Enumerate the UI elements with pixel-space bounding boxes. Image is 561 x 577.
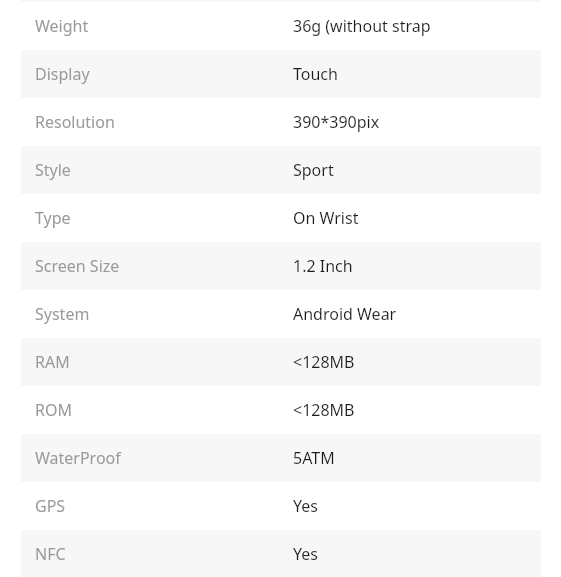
staticText: GPS	[35, 495, 66, 517]
staticText: NFC	[35, 543, 66, 565]
staticText: Yes	[293, 543, 553, 565]
staticText: RAM	[35, 351, 70, 373]
button[interactable]: Screen Size	[0, 242, 561, 290]
button[interactable]: Resolution	[0, 98, 561, 146]
staticText: 5ATM	[293, 447, 553, 469]
staticText: Display	[35, 63, 90, 85]
staticText: On Wrist	[293, 207, 553, 229]
button[interactable]: Style	[0, 146, 561, 194]
staticText: WaterProof	[35, 447, 121, 469]
staticText: 36g (without strap	[293, 15, 553, 37]
staticText: Android Wear	[293, 303, 553, 325]
button[interactable]: ROM	[0, 386, 561, 434]
staticText: Resolution	[35, 111, 115, 133]
staticText: <128MB	[293, 399, 553, 421]
staticText: System	[35, 303, 90, 325]
button[interactable]: NFC	[0, 530, 561, 577]
staticText: Style	[35, 159, 71, 181]
button[interactable]: Type	[0, 194, 561, 242]
staticText: Weight	[35, 15, 89, 37]
staticText: Sport	[293, 159, 553, 181]
button[interactable]: WaterProof	[0, 434, 561, 482]
button[interactable]: RAM	[0, 338, 561, 386]
staticText: Type	[35, 207, 71, 229]
staticText: Touch	[293, 63, 553, 85]
button[interactable]: System	[0, 290, 561, 338]
staticText: 1.2 Inch	[293, 255, 553, 277]
button[interactable]: Weight	[0, 2, 561, 50]
staticText: Screen Size	[35, 255, 120, 277]
staticText: Yes	[293, 495, 553, 517]
staticText: 390*390pix	[293, 111, 553, 133]
button[interactable]: Display	[0, 50, 561, 98]
staticText: ROM	[35, 399, 72, 421]
staticText: <128MB	[293, 351, 553, 373]
button[interactable]: GPS	[0, 482, 561, 530]
